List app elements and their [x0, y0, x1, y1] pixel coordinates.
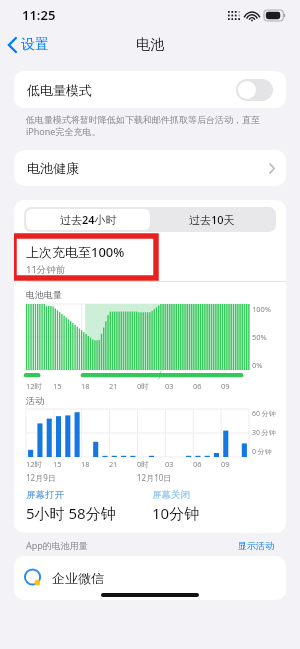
button[interactable]: 过去24小时	[26, 209, 150, 230]
staticText: 0%	[252, 360, 263, 370]
staticText: 50%	[252, 332, 267, 342]
staticText: 12时	[26, 459, 43, 469]
staticText: 09	[221, 381, 230, 391]
staticText: 15	[53, 459, 62, 469]
button[interactable]: 企业微信	[14, 556, 286, 600]
staticText: 09	[221, 459, 230, 469]
button[interactable]: 显示活动	[238, 540, 274, 551]
staticText: 电池健康	[27, 160, 269, 176]
staticText: 30 分钟	[252, 428, 276, 438]
staticText: 低电量模式将暂时降低如下载和邮件抓取等后台活动，直至 iPhone完全充电。	[26, 114, 260, 138]
staticText: 21	[109, 381, 118, 391]
staticText: 03	[165, 381, 174, 391]
staticText: 显示活动	[238, 540, 274, 551]
staticText: App的电池用量	[26, 539, 238, 551]
staticText: 活动	[26, 395, 44, 406]
staticText: 12时	[26, 381, 43, 391]
staticText: 11分钟前	[26, 263, 66, 276]
staticText: 03	[165, 459, 174, 469]
staticText: 设置	[21, 36, 49, 54]
staticText: 0 分钟	[252, 447, 272, 457]
staticText: 10分钟	[152, 503, 200, 523]
staticText: 企业微信	[52, 570, 104, 586]
button[interactable]: 过去10天	[150, 209, 274, 230]
button[interactable]: 电池健康	[14, 150, 286, 186]
staticText: 18	[81, 381, 90, 391]
staticText: 5小时 58分钟	[26, 503, 116, 523]
staticText: 上次充电至100%	[26, 243, 125, 261]
staticText: 过去10天	[189, 212, 235, 227]
staticText: 15	[53, 381, 62, 391]
button[interactable]: 低电量模式	[14, 71, 286, 108]
staticText: 0时	[137, 459, 149, 469]
staticText: 18	[81, 459, 90, 469]
staticText: 06	[193, 381, 202, 391]
staticText: 电池	[136, 36, 164, 54]
staticText: 低电量模式	[27, 82, 236, 98]
staticText: 12月10日	[137, 472, 172, 483]
staticText: 21	[109, 459, 118, 469]
staticText: 11:25	[22, 6, 56, 24]
button[interactable]: 设置	[0, 32, 57, 58]
staticText: 屏幕关闭	[152, 489, 190, 501]
staticText: 屏幕打开	[26, 489, 64, 501]
staticText: 100%	[252, 304, 272, 314]
staticText: 06	[193, 459, 202, 469]
staticText: 过去24小时	[60, 212, 117, 227]
staticText: 12月9日	[26, 472, 56, 483]
staticText: 60 分钟	[252, 409, 276, 419]
staticText: 0时	[137, 381, 149, 391]
staticText: 电池电量	[26, 289, 62, 300]
